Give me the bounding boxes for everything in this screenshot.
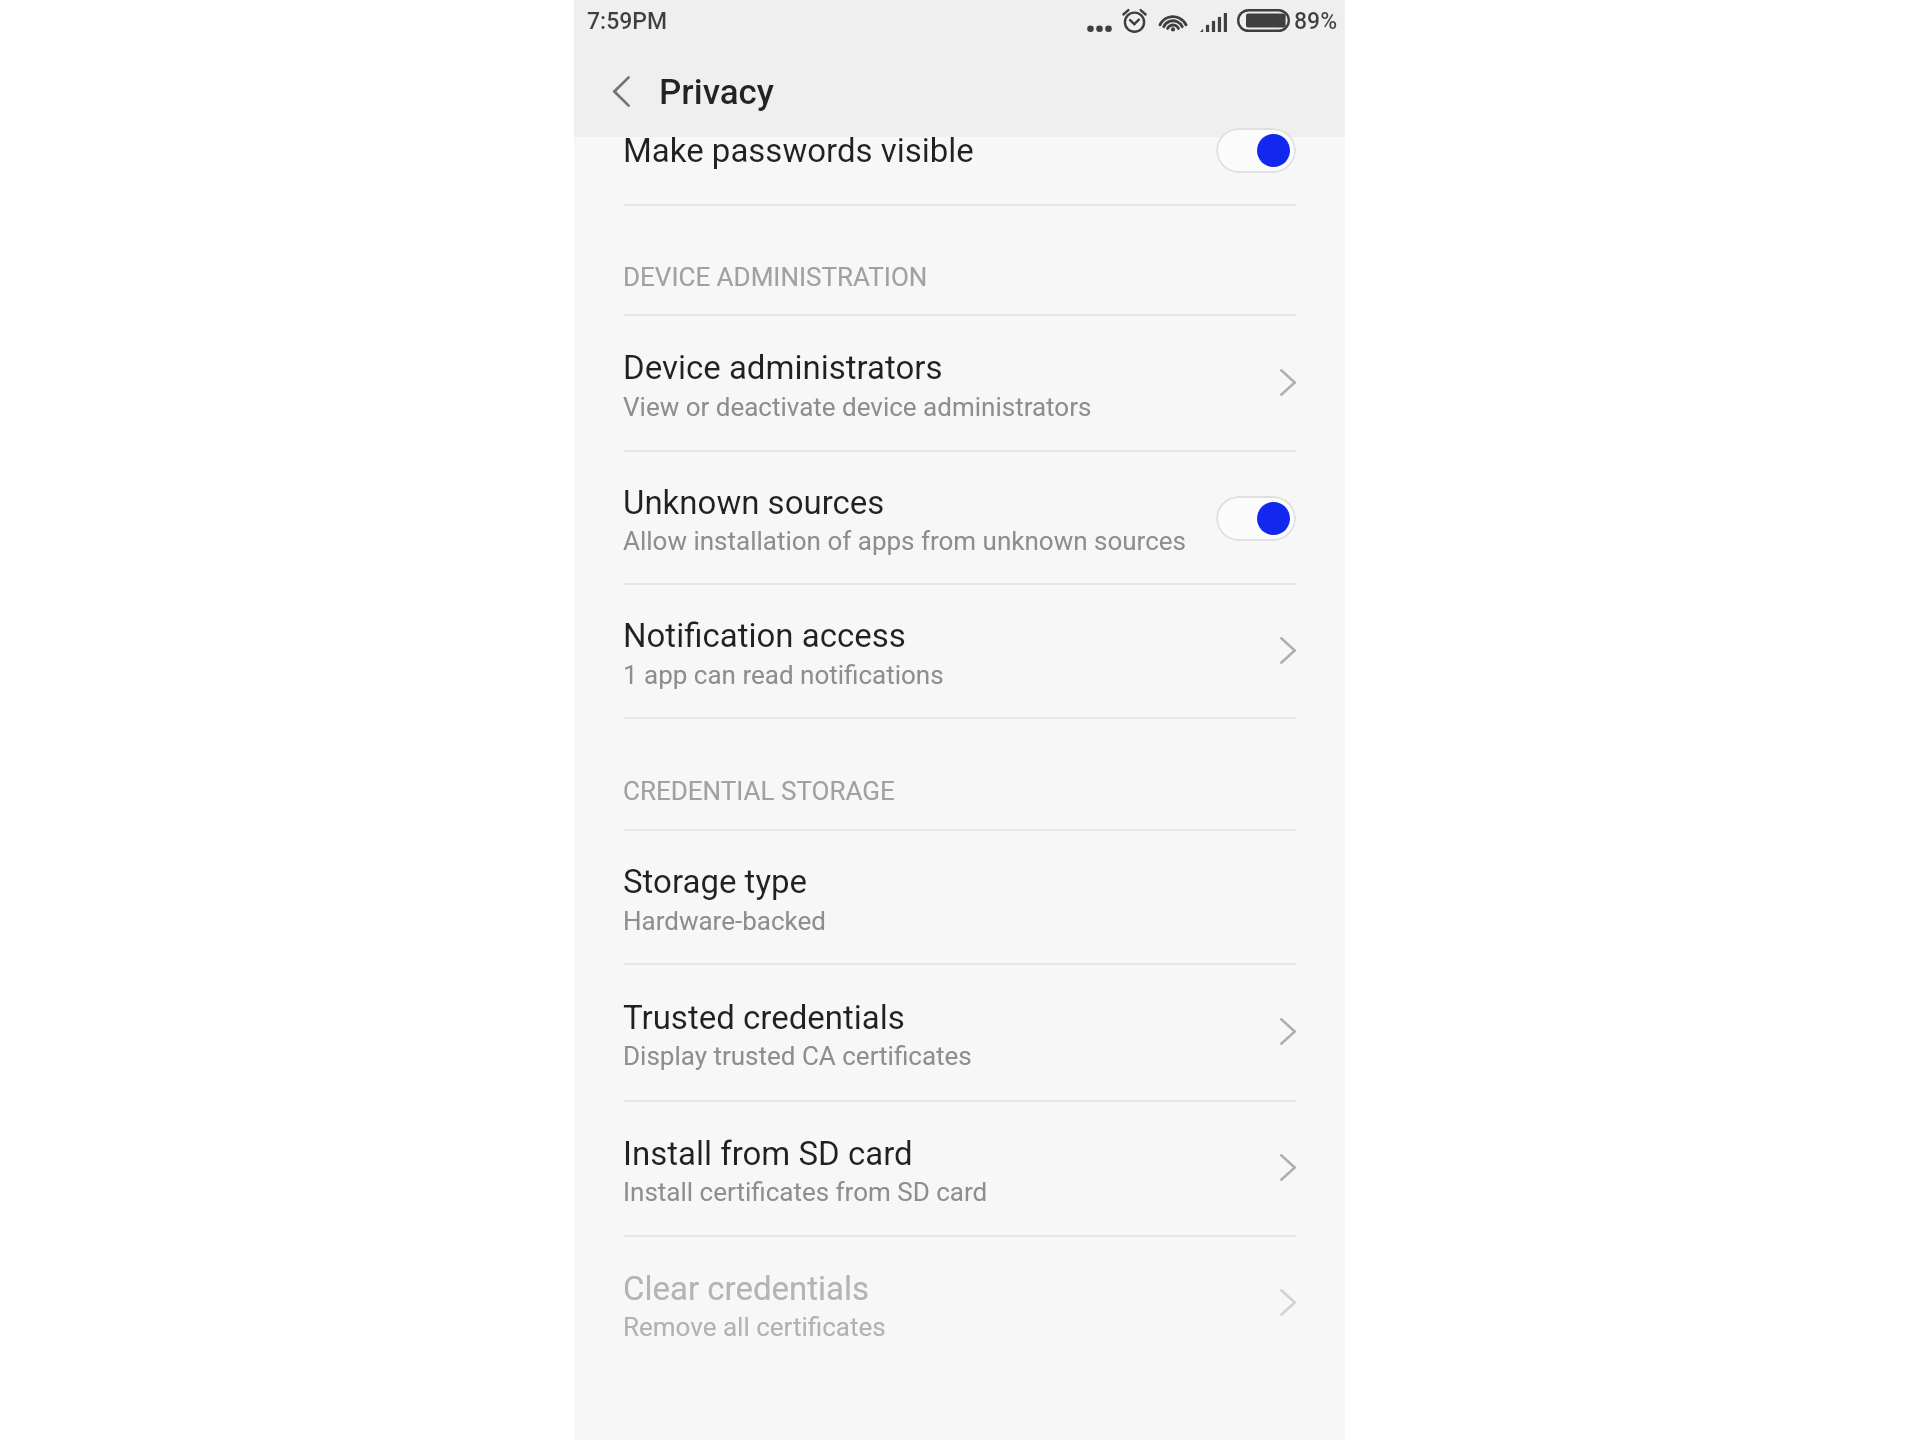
staticText: Privacy bbox=[659, 72, 775, 113]
staticText: Trusted credentials bbox=[623, 998, 905, 1037]
staticText: CREDENTIAL STORAGE bbox=[623, 776, 895, 806]
staticText: 1 app can read notifications bbox=[623, 660, 944, 690]
staticText: Notification access bbox=[623, 616, 906, 655]
button[interactable]: Notification access bbox=[574, 583, 1345, 717]
staticText: Install certificates from SD card bbox=[623, 1177, 988, 1207]
staticText: Allow installation of apps from unknown … bbox=[623, 526, 1186, 556]
staticText: 89% bbox=[1294, 8, 1338, 35]
button[interactable]: Back bbox=[586, 56, 656, 126]
staticText: Storage type bbox=[623, 862, 808, 901]
button[interactable]: Trusted credentials bbox=[574, 963, 1345, 1100]
staticText: DEVICE ADMINISTRATION bbox=[623, 262, 928, 292]
button[interactable]: Make passwords visible, on bbox=[1216, 128, 1296, 173]
button[interactable]: Clear credentials bbox=[574, 1235, 1345, 1370]
staticText: Clear credentials bbox=[623, 1269, 870, 1308]
staticText: View or deactivate device administrators bbox=[623, 392, 1092, 422]
button[interactable]: Install from SD card bbox=[574, 1100, 1345, 1235]
button[interactable]: Make passwords visible bbox=[574, 137, 1345, 204]
staticText: Unknown sources bbox=[623, 483, 885, 522]
button[interactable]: Storage type bbox=[574, 829, 1345, 963]
staticText: Display trusted CA certificates bbox=[623, 1041, 972, 1071]
staticText: Install from SD card bbox=[623, 1134, 913, 1173]
button[interactable]: Unknown sources, on bbox=[1216, 496, 1296, 541]
button[interactable]: Unknown sources bbox=[574, 450, 1345, 583]
staticText: 7:59PM bbox=[587, 8, 668, 35]
staticText: Hardware-backed bbox=[623, 906, 826, 936]
staticText: Make passwords visible bbox=[623, 131, 974, 170]
staticText: Device administrators bbox=[623, 348, 943, 387]
button[interactable]: Device administrators bbox=[574, 314, 1345, 450]
staticText: Remove all certificates bbox=[623, 1312, 886, 1342]
